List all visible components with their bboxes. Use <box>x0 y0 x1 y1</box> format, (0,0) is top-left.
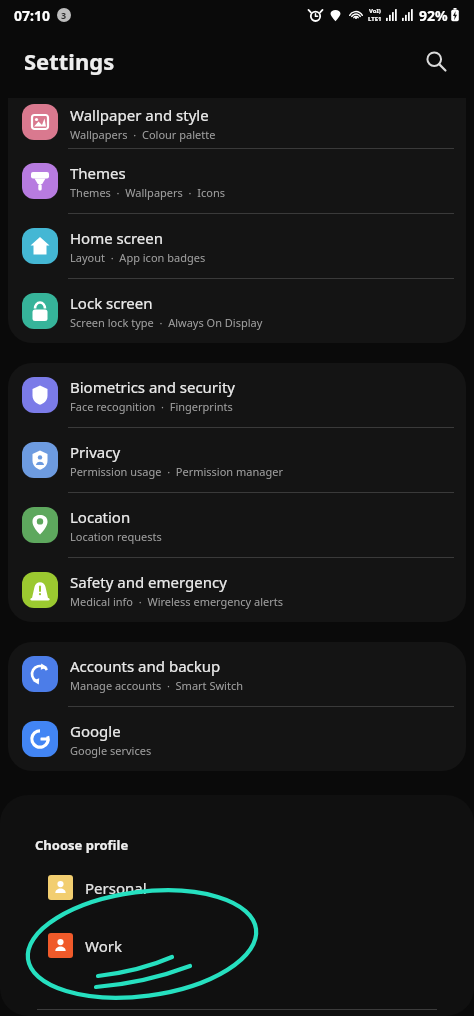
button[interactable]: Themes <box>8 149 466 213</box>
staticText: Accounts and backup <box>70 656 221 676</box>
button[interactable]: Privacy <box>8 428 466 492</box>
staticText: Settings <box>24 46 115 76</box>
staticText: LTE1 <box>368 15 382 23</box>
staticText: Personal <box>85 878 147 898</box>
button[interactable]: Accounts and backup <box>8 642 466 706</box>
staticText: VoI) <box>369 7 381 15</box>
staticText: Biometrics and security <box>70 377 236 397</box>
staticText: Medical info · Wireless emergency alerts <box>70 594 284 609</box>
button[interactable]: Biometrics and security <box>8 363 466 427</box>
staticText: Choose profile <box>35 836 129 854</box>
staticText: Wallpaper and style <box>70 105 209 125</box>
staticText: Face recognition · Fingerprints <box>70 399 233 414</box>
staticText: Safety and emergency <box>70 572 227 592</box>
staticText: Privacy <box>70 442 121 462</box>
button[interactable]: Google <box>8 707 466 771</box>
staticText: Screen lock type · Always On Display <box>70 315 263 330</box>
staticText: 92% <box>419 6 448 25</box>
staticText: Themes · Wallpapers · Icons <box>70 185 225 200</box>
staticText: Permission usage · Permission manager <box>70 464 283 479</box>
staticText: Lock screen <box>70 293 153 313</box>
staticText: 07:10 <box>14 6 50 25</box>
button[interactable]: Search <box>416 41 456 81</box>
button[interactable]: Work <box>0 933 474 958</box>
staticText: Themes <box>70 163 126 183</box>
staticText: Google <box>70 721 121 741</box>
button[interactable]: Safety and emergency <box>8 558 466 622</box>
button[interactable]: Lock screen <box>8 279 466 343</box>
staticText: Wallpapers · Colour palette <box>70 127 216 142</box>
button[interactable]: Wallpaper and style <box>8 98 466 148</box>
staticText: Work <box>85 936 122 956</box>
staticText: 3 <box>61 9 67 21</box>
staticText: Location requests <box>70 529 162 544</box>
button[interactable]: Personal <box>0 875 474 900</box>
button[interactable]: Home screen <box>8 214 466 278</box>
button[interactable]: Location <box>8 493 466 557</box>
staticText: Manage accounts · Smart Switch <box>70 678 243 693</box>
staticText: Home screen <box>70 228 164 248</box>
staticText: Google services <box>70 743 152 758</box>
staticText: Location <box>70 507 131 527</box>
staticText: Layout · App icon badges <box>70 250 206 265</box>
